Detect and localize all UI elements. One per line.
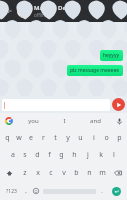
- button[interactable]: g: [55, 146, 68, 164]
- button[interactable]: z: [18, 164, 31, 182]
- staticText: offline: [34, 12, 48, 18]
- button[interactable]: m: [96, 164, 109, 182]
- button[interactable]: Enter: [106, 182, 126, 200]
- staticText: heyyyy: [103, 52, 120, 59]
- button[interactable]: Send: [112, 98, 125, 111]
- button[interactable]: i: [87, 129, 100, 146]
- staticText: m: [99, 168, 106, 178]
- staticText: n: [87, 168, 92, 178]
- staticText: w: [16, 133, 22, 143]
- staticText: t: [54, 133, 57, 143]
- staticText: y: [66, 133, 70, 143]
- staticText: b: [74, 168, 79, 178]
- button[interactable]: w: [13, 129, 25, 146]
- staticText: x: [36, 168, 40, 178]
- button[interactable]: plz message meeeee: [67, 65, 123, 76]
- button[interactable]: c: [44, 164, 57, 182]
- button[interactable]: n: [83, 164, 96, 182]
- button[interactable]: q: [1, 129, 13, 146]
- staticText: d: [35, 150, 40, 160]
- button[interactable]: a: [7, 146, 19, 164]
- button[interactable]: and: [80, 113, 111, 129]
- button[interactable]: b: [70, 164, 83, 182]
- button[interactable]: t: [49, 129, 61, 146]
- button[interactable]: p: [113, 129, 126, 146]
- staticText: and: [90, 117, 101, 125]
- button[interactable]: h: [68, 146, 81, 164]
- staticText: z: [23, 168, 27, 178]
- button[interactable]: Space: [43, 182, 96, 200]
- staticText: k: [99, 150, 103, 160]
- staticText: u: [78, 133, 83, 143]
- staticText: ?123: [6, 188, 17, 195]
- staticText: q: [5, 133, 10, 143]
- staticText: s: [23, 150, 27, 160]
- button[interactable]: you: [18, 113, 49, 129]
- button[interactable]: e: [25, 129, 37, 146]
- button[interactable]: Malvina Delov: [34, 4, 123, 18]
- button[interactable]: x: [31, 164, 44, 182]
- staticText: .: [101, 187, 103, 195]
- staticText: plz message meeeee: [70, 67, 120, 74]
- staticText: a: [11, 150, 15, 160]
- staticText: g: [59, 150, 64, 160]
- staticText: you: [28, 117, 39, 125]
- button[interactable]: k: [94, 146, 107, 164]
- button[interactable]: d: [31, 146, 43, 164]
- staticText: e: [29, 133, 33, 143]
- staticText: ,: [25, 187, 27, 195]
- button[interactable]: j: [81, 146, 94, 164]
- button[interactable]: Back: [2, 4, 16, 18]
- button[interactable]: .: [97, 182, 106, 200]
- button[interactable]: Contact photo: [17, 4, 31, 18]
- button[interactable]: ,: [21, 182, 30, 200]
- button[interactable]: l: [107, 146, 120, 164]
- staticText: j: [87, 150, 89, 160]
- staticText: h: [72, 150, 77, 160]
- staticText: p: [117, 133, 122, 143]
- button[interactable]: I: [49, 113, 80, 129]
- staticText: v: [62, 168, 66, 178]
- button[interactable]: r: [37, 129, 49, 146]
- button[interactable]: o: [100, 129, 113, 146]
- staticText: l: [113, 150, 115, 160]
- staticText: Malvina Delov: [34, 4, 75, 12]
- staticText: r: [42, 133, 45, 143]
- button[interactable]: [2, 99, 110, 111]
- button[interactable]: y: [61, 129, 74, 146]
- button[interactable]: Shift: [1, 164, 18, 182]
- staticText: I: [63, 117, 66, 125]
- staticText: f: [48, 150, 51, 160]
- staticText: i: [93, 133, 95, 143]
- button[interactable]: f: [43, 146, 55, 164]
- button[interactable]: u: [74, 129, 87, 146]
- button[interactable]: Voice input: [111, 113, 127, 129]
- staticText: c: [49, 168, 53, 178]
- button[interactable]: v: [57, 164, 70, 182]
- button[interactable]: Emoji: [30, 182, 42, 200]
- button[interactable]: Google Search: [0, 113, 18, 129]
- staticText: o: [104, 133, 109, 143]
- button[interactable]: ?123: [1, 182, 21, 200]
- button[interactable]: heyyyy: [100, 50, 123, 61]
- button[interactable]: Backspace: [109, 164, 126, 182]
- button[interactable]: s: [19, 146, 31, 164]
